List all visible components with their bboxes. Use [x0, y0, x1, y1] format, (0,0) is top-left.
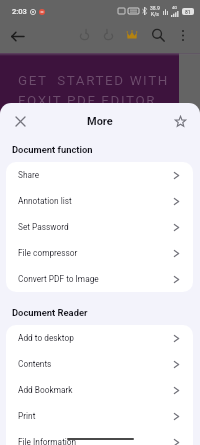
button[interactable]: Share [6, 162, 193, 188]
staticText: Document function [12, 144, 93, 155]
button[interactable]: Back [5, 24, 29, 48]
button[interactable]: Add to desktop [6, 325, 193, 351]
button[interactable]: Annotation list [6, 188, 193, 214]
staticText: 38.9 [150, 5, 160, 11]
staticText: File compressor [18, 248, 78, 258]
staticText: Add Bookmark [18, 385, 73, 395]
button[interactable]: Premium [121, 24, 143, 46]
staticText: Add to desktop [18, 333, 74, 343]
staticText: Print [18, 411, 36, 421]
staticText: FOXIT PDF EDITOR [18, 93, 157, 109]
staticText: 4G [172, 5, 178, 10]
button[interactable]: File Information [6, 429, 193, 445]
button[interactable]: Add Bookmark [6, 377, 193, 403]
staticText: Convert PDF to Image [18, 274, 99, 284]
staticText: Contents [18, 359, 52, 369]
staticText: Document Reader [12, 307, 88, 318]
staticText: 81 [185, 9, 191, 15]
staticText: File Information [18, 437, 77, 445]
staticText: Set Password [18, 222, 69, 232]
button[interactable]: More options [172, 24, 194, 46]
button[interactable]: File compressor [6, 240, 193, 266]
button[interactable]: Close [9, 110, 31, 132]
button[interactable]: Print [6, 403, 193, 429]
button[interactable]: Search [147, 24, 169, 46]
staticText: GET STARTED WITH [18, 73, 169, 89]
button[interactable]: Add to favourites [169, 110, 191, 132]
button[interactable]: Undo [73, 24, 95, 46]
staticText: 2:03 [12, 7, 27, 16]
button[interactable]: Convert PDF to Image [6, 266, 193, 292]
staticText: K/s [151, 11, 159, 17]
staticText: Share [18, 170, 40, 180]
button[interactable]: Redo [97, 24, 119, 46]
staticText: Annotation list [18, 196, 72, 206]
button[interactable]: Set Password [6, 214, 193, 240]
staticText: More [87, 115, 113, 128]
button[interactable]: Contents [6, 351, 193, 377]
